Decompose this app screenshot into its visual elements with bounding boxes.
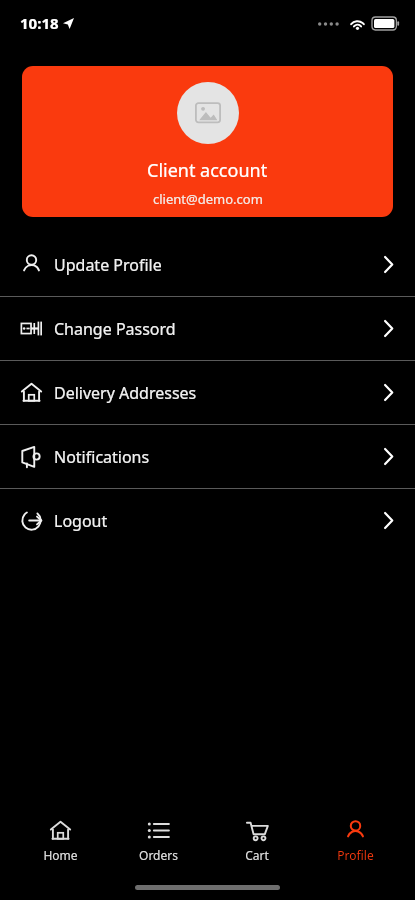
staticText: client@demo.com bbox=[153, 190, 263, 208]
staticText: Logout bbox=[54, 510, 108, 532]
staticText: Delivery Addresses bbox=[54, 382, 197, 404]
button[interactable]: Profile bbox=[311, 813, 399, 869]
staticText: 10:18 bbox=[20, 13, 59, 33]
button[interactable]: Logout bbox=[0, 489, 415, 552]
button[interactable]: Update Profile bbox=[0, 233, 415, 296]
button[interactable]: Notifications bbox=[0, 425, 415, 488]
button[interactable]: Change Passord bbox=[0, 297, 415, 360]
staticText: Update Profile bbox=[54, 254, 162, 276]
button[interactable]: Home bbox=[16, 813, 104, 869]
staticText: Cart bbox=[245, 847, 269, 863]
button[interactable]: Delivery Addresses bbox=[0, 361, 415, 424]
staticText: Orders bbox=[139, 847, 178, 863]
button[interactable]: Orders bbox=[114, 813, 202, 869]
button[interactable]: Client account bbox=[22, 66, 393, 217]
staticText: Notifications bbox=[54, 446, 150, 468]
staticText: Client account bbox=[147, 158, 268, 183]
staticText: Home bbox=[43, 847, 78, 863]
staticText: Change Passord bbox=[54, 318, 176, 340]
button[interactable]: Cart bbox=[213, 813, 301, 869]
staticText: Profile bbox=[337, 847, 374, 863]
